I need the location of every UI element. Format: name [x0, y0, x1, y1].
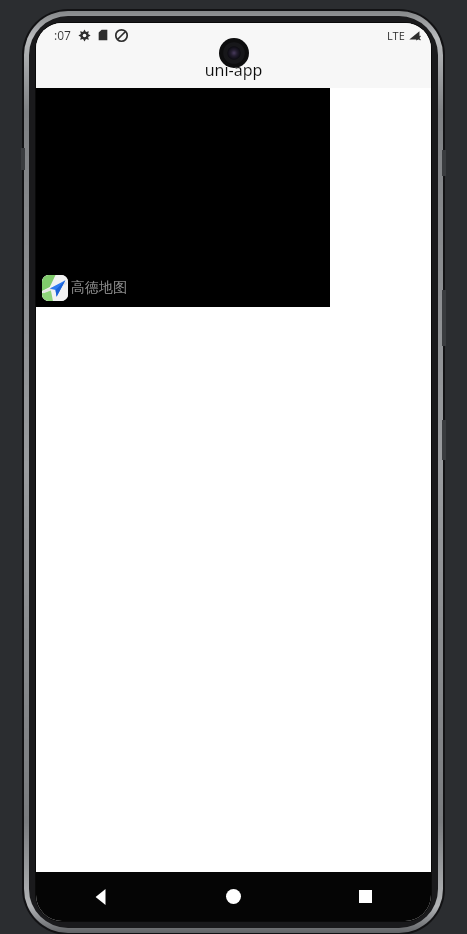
staticText: 高德地图 — [71, 279, 127, 297]
staticText: uni-app — [36, 59, 431, 81]
staticText: :07 — [54, 27, 71, 43]
button[interactable]: 高德地图 — [36, 88, 330, 307]
staticText: LTE — [387, 28, 405, 43]
button[interactable]: Home — [168, 872, 299, 921]
button[interactable]: Back — [36, 872, 168, 921]
button[interactable]: Recent apps — [299, 872, 431, 921]
